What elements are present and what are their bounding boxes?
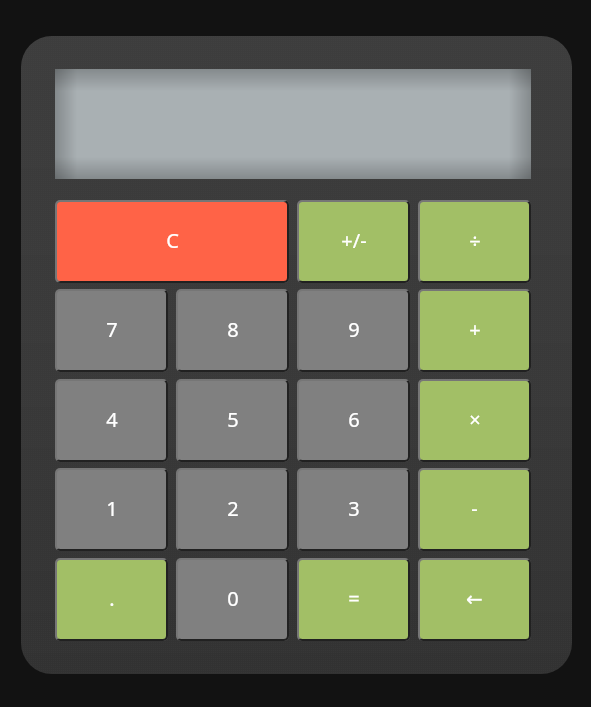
button[interactable]: 7 xyxy=(55,289,168,372)
staticText: 7 xyxy=(106,316,118,343)
button[interactable]: = xyxy=(297,558,410,641)
staticText: - xyxy=(471,495,478,522)
button[interactable]: × xyxy=(418,379,531,462)
staticText: +/- xyxy=(341,227,367,254)
staticText: ÷ xyxy=(469,227,481,254)
staticText: 2 xyxy=(227,495,239,522)
staticText: 6 xyxy=(348,406,360,433)
button[interactable]: 3 xyxy=(297,468,410,551)
button[interactable]: . xyxy=(55,558,168,641)
staticText: 4 xyxy=(106,406,118,433)
staticText: 0 xyxy=(227,585,239,612)
button[interactable]: 6 xyxy=(297,379,410,462)
button[interactable]: - xyxy=(418,468,531,551)
staticText: 3 xyxy=(348,495,360,522)
button[interactable]: 9 xyxy=(297,289,410,372)
button[interactable]: +/- xyxy=(297,200,410,283)
staticText: 5 xyxy=(227,406,239,433)
button[interactable]: ÷ xyxy=(418,200,531,283)
button[interactable]: 4 xyxy=(55,379,168,462)
staticText: 9 xyxy=(348,316,360,343)
button[interactable]: 8 xyxy=(176,289,289,372)
staticText: 8 xyxy=(227,316,239,343)
staticText: = xyxy=(348,585,360,612)
staticText: 1 xyxy=(106,495,118,522)
staticText: ← xyxy=(466,587,483,610)
button[interactable]: 2 xyxy=(176,468,289,551)
button[interactable]: + xyxy=(418,289,531,372)
button[interactable]: Backspace xyxy=(418,558,531,641)
button[interactable]: C xyxy=(55,200,289,283)
staticText: × xyxy=(469,406,481,433)
staticText: + xyxy=(469,316,481,343)
button[interactable]: 1 xyxy=(55,468,168,551)
staticText: C xyxy=(166,227,179,254)
button[interactable]: 0 xyxy=(176,558,289,641)
button[interactable]: 5 xyxy=(176,379,289,462)
staticText: . xyxy=(109,585,115,612)
